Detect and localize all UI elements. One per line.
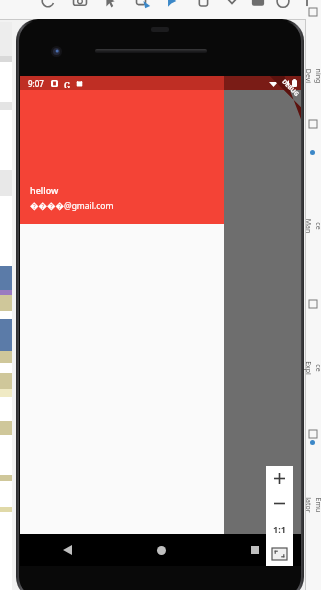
button[interactable]: Zoom out xyxy=(266,491,293,516)
button[interactable]: Tool window xyxy=(309,430,317,438)
button[interactable]: Actual size xyxy=(266,516,293,541)
button[interactable]: Home xyxy=(114,534,208,566)
button[interactable]: Emulator xyxy=(305,470,321,540)
staticText: hellow xyxy=(30,184,59,196)
staticText: ����@gmail.com xyxy=(30,200,114,212)
button[interactable]: Tool window xyxy=(309,8,317,16)
button[interactable]: Device Explorer xyxy=(305,318,321,418)
button[interactable]: Zoom to fit xyxy=(266,541,293,566)
button[interactable]: Back xyxy=(20,534,114,566)
button[interactable]: Toolbar action 7 xyxy=(223,0,241,10)
staticText: 9:07 xyxy=(28,78,44,89)
staticText: Emulator xyxy=(303,497,321,513)
staticText: Running Devices xyxy=(293,68,321,84)
button[interactable]: Toolbar action 9 xyxy=(274,0,292,10)
button[interactable]: Running Devices xyxy=(305,26,321,126)
staticText: G xyxy=(64,80,71,88)
button[interactable]: Toolbar action 4 xyxy=(134,0,152,10)
button[interactable]: Toolbar action 5 xyxy=(163,0,181,10)
button[interactable]: Toolbar action 2 xyxy=(71,0,89,10)
button[interactable]: Toolbar action 8 xyxy=(249,0,267,10)
button[interactable]: Toolbar action 3 xyxy=(101,0,119,10)
button[interactable]: Tool window xyxy=(309,300,317,308)
staticText: 1:1 xyxy=(273,523,286,535)
button[interactable]: hellow xyxy=(20,90,224,224)
button[interactable]: Toolbar action 10 xyxy=(298,0,316,10)
button[interactable]: Toolbar action 1 xyxy=(39,0,57,10)
button[interactable]: Recent apps xyxy=(208,534,301,566)
button[interactable]: Tool window xyxy=(309,120,317,128)
staticText: Device Explorer xyxy=(293,360,321,376)
staticText: DEBUG xyxy=(280,78,301,98)
staticText: Device Manager xyxy=(293,218,321,234)
button[interactable]: Device Manager xyxy=(305,176,321,276)
button[interactable]: Zoom in xyxy=(266,466,293,491)
button[interactable]: Toolbar action 6 xyxy=(195,0,213,10)
